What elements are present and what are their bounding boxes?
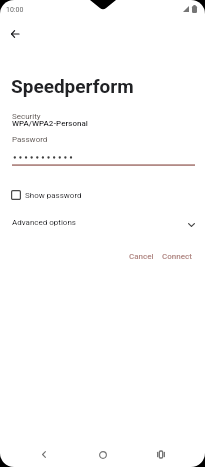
staticText: Connect <box>162 252 192 261</box>
button[interactable]: Advanced options <box>0 215 205 229</box>
staticText: Advanced options <box>12 218 76 227</box>
staticText: Speedperform <box>11 75 134 97</box>
button[interactable]: Show password <box>11 190 82 200</box>
staticText: Cancel <box>129 252 154 261</box>
button[interactable]: Connect <box>158 249 196 264</box>
button[interactable]: Back <box>32 443 55 466</box>
staticText: Show password <box>25 191 82 200</box>
staticText: Password <box>12 135 48 144</box>
button[interactable]: Back <box>4 23 26 45</box>
staticText: WPA/WPA2-Personal <box>12 119 88 128</box>
button[interactable]: Home <box>91 443 114 466</box>
staticText: Security <box>12 112 41 121</box>
button[interactable]: Recent apps <box>149 443 172 466</box>
staticText: 10:00 <box>6 6 24 14</box>
button[interactable]: Cancel <box>125 249 158 264</box>
